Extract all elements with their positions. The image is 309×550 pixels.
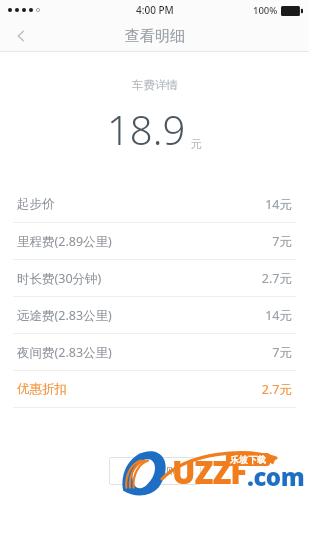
button[interactable]: Back	[0, 20, 42, 52]
staticText: 14元	[265, 307, 292, 324]
staticText: 元	[191, 137, 202, 151]
staticText: 优惠折扣	[17, 381, 261, 397]
staticText: .com	[247, 460, 305, 493]
button[interactable]: 里程费(2.89公里)	[0, 223, 309, 259]
staticText: 夜间费(2.83公里)	[17, 344, 272, 361]
staticText: 14元	[265, 196, 292, 213]
staticText: 查看明细	[125, 27, 185, 46]
staticText: 车费详情	[132, 78, 178, 92]
staticText: 2.7元	[261, 381, 292, 398]
button[interactable]: 起步价	[0, 186, 309, 222]
staticText: 远途费(2.83公里)	[17, 307, 265, 324]
staticText: 2.7元	[261, 270, 292, 287]
staticText: 时长费(30分钟)	[17, 270, 261, 287]
button[interactable]: 夜间费(2.83公里)	[0, 334, 309, 370]
staticText: 18.9	[107, 102, 186, 156]
staticText: 起步价	[17, 196, 265, 212]
staticText: 7元	[272, 233, 292, 250]
button[interactable]: 计价规则	[109, 457, 201, 485]
staticText: 4:00 PM	[136, 3, 174, 17]
button[interactable]: 时长费(30分钟)	[0, 260, 309, 296]
button[interactable]: 远途费(2.83公里)	[0, 297, 309, 333]
button[interactable]: 优惠折扣	[0, 371, 309, 407]
staticText: UZZF	[172, 451, 247, 493]
staticText: 乐坡下载	[230, 454, 266, 465]
staticText: 计价规则	[133, 464, 177, 478]
staticText: 7元	[272, 344, 292, 361]
staticText: 100%	[253, 4, 278, 17]
staticText: 里程费(2.89公里)	[17, 233, 272, 250]
